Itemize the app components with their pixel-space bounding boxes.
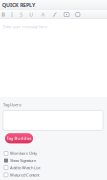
staticText: Enter your message here [3, 24, 47, 29]
staticText: A [41, 11, 44, 18]
staticText: Tag Buddies [6, 136, 31, 141]
staticText: Matured Content [10, 172, 39, 178]
button[interactable]: Add to Watch List [4, 166, 107, 170]
staticText: Show Signature [10, 158, 36, 163]
staticText: Tag Users: [3, 102, 22, 107]
button[interactable]: Bold [0, 10, 7, 19]
staticText: QUICK REPLY [2, 1, 35, 9]
button[interactable]: Show Signature [4, 158, 107, 162]
button[interactable]: Matured Content [4, 173, 107, 177]
button[interactable]: Strikethrough [17, 10, 26, 19]
button[interactable]: Underline [26, 10, 37, 19]
button[interactable]: Insert link [49, 10, 61, 19]
staticText: I [11, 11, 13, 18]
button[interactable]: Tag Buddies [5, 133, 33, 143]
staticText: Members Only [10, 151, 37, 156]
staticText: Add to Watch List [10, 165, 40, 170]
button[interactable]: Italic [7, 10, 17, 19]
button[interactable]: Text colour [37, 10, 49, 19]
staticText: B [2, 11, 6, 18]
button[interactable]: Members Only [4, 151, 107, 155]
staticText: U [29, 11, 33, 18]
staticText: S [20, 11, 23, 18]
button[interactable]: Insert emoji [72, 10, 83, 19]
button[interactable]: Insert image [61, 10, 72, 19]
